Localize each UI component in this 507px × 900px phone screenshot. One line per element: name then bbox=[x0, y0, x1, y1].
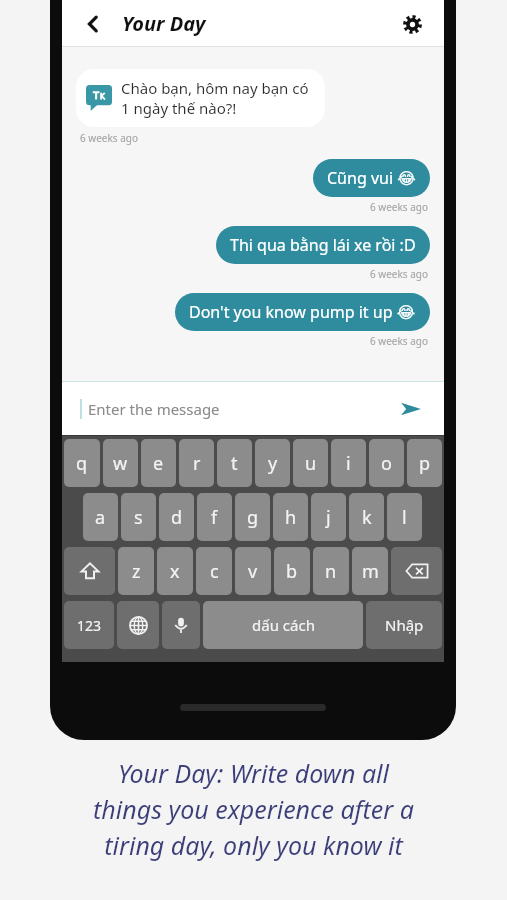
button[interactable]: Thi qua bằng lái xe rồi :D bbox=[216, 226, 430, 264]
staticText: Chào bạn, hôm nay bạn có bbox=[121, 78, 309, 98]
button[interactable]: q bbox=[64, 439, 100, 487]
staticText: l bbox=[402, 505, 407, 530]
staticText: b bbox=[286, 559, 298, 584]
button[interactable]: e bbox=[141, 439, 176, 487]
staticText: dấu cách bbox=[252, 615, 315, 635]
button[interactable]: Chào bạn, hôm nay bạn có bbox=[76, 69, 325, 127]
button[interactable]: k bbox=[349, 493, 384, 541]
staticText: Your Day bbox=[122, 10, 206, 37]
staticText: z bbox=[132, 559, 141, 584]
staticText: p bbox=[419, 451, 431, 476]
button[interactable]: dấu cách bbox=[203, 601, 363, 649]
staticText: u bbox=[305, 451, 317, 476]
button[interactable]: h bbox=[273, 493, 308, 541]
button[interactable]: d bbox=[159, 493, 194, 541]
staticText: Your Day: Write down all bbox=[0, 756, 507, 790]
staticText: w bbox=[113, 451, 128, 476]
staticText: k bbox=[362, 505, 372, 530]
button[interactable]: s bbox=[121, 493, 156, 541]
button[interactable]: m bbox=[352, 547, 388, 595]
staticText: i bbox=[346, 451, 351, 476]
button[interactable]: Change language bbox=[117, 601, 159, 649]
button[interactable]: Send bbox=[394, 392, 428, 426]
button[interactable]: 123 bbox=[64, 601, 114, 649]
button[interactable]: Backspace bbox=[391, 547, 442, 595]
button[interactable]: t bbox=[217, 439, 252, 487]
button[interactable]: Nhập bbox=[366, 601, 442, 649]
button[interactable]: p bbox=[407, 439, 442, 487]
button[interactable]: Don't you know pump it up 😂 bbox=[175, 293, 430, 331]
staticText: v bbox=[248, 559, 258, 584]
staticText: n bbox=[325, 559, 337, 584]
button[interactable]: i bbox=[331, 439, 366, 487]
staticText: Enter the message bbox=[88, 399, 220, 419]
staticText: d bbox=[171, 505, 183, 530]
staticText: y bbox=[268, 451, 278, 476]
button[interactable]: z bbox=[118, 547, 154, 595]
button[interactable]: f bbox=[197, 493, 232, 541]
button[interactable]: Voice input bbox=[162, 601, 200, 649]
button[interactable]: w bbox=[103, 439, 138, 487]
staticText: c bbox=[210, 559, 219, 584]
staticText: 6 weeks ago bbox=[370, 334, 428, 348]
staticText: o bbox=[381, 451, 392, 476]
staticText: Don't you know pump it up 😂 bbox=[189, 301, 416, 323]
staticText: 1 ngày thế nào?! bbox=[121, 98, 237, 118]
staticText: x bbox=[170, 559, 180, 584]
button[interactable]: Back bbox=[76, 7, 110, 41]
button[interactable]: Shift bbox=[64, 547, 115, 595]
staticText: 6 weeks ago bbox=[370, 200, 428, 214]
staticText: s bbox=[134, 505, 143, 530]
staticText: tiring day, only you know it bbox=[0, 828, 507, 862]
staticText: f bbox=[211, 505, 218, 530]
staticText: things you experience after a bbox=[0, 792, 507, 826]
button[interactable]: x bbox=[157, 547, 193, 595]
staticText: 6 weeks ago bbox=[370, 267, 428, 281]
staticText: Cũng vui 😂 bbox=[327, 167, 416, 189]
staticText: j bbox=[326, 505, 331, 530]
button[interactable]: j bbox=[311, 493, 346, 541]
staticText: h bbox=[285, 505, 297, 530]
staticText: 123 bbox=[77, 616, 102, 635]
button[interactable]: y bbox=[255, 439, 290, 487]
staticText: e bbox=[153, 451, 164, 476]
button[interactable]: l bbox=[387, 493, 422, 541]
button[interactable]: u bbox=[293, 439, 328, 487]
button[interactable]: Settings bbox=[394, 6, 430, 42]
staticText: t bbox=[231, 451, 238, 476]
staticText: m bbox=[362, 559, 379, 584]
staticText: a bbox=[95, 505, 106, 530]
button[interactable]: r bbox=[179, 439, 214, 487]
button[interactable]: n bbox=[313, 547, 349, 595]
button[interactable]: Enter the message bbox=[88, 399, 394, 419]
button[interactable]: b bbox=[274, 547, 310, 595]
button[interactable]: a bbox=[83, 493, 118, 541]
staticText: q bbox=[76, 451, 88, 476]
staticText: Thi qua bằng lái xe rồi :D bbox=[230, 234, 416, 256]
button[interactable]: c bbox=[196, 547, 232, 595]
staticText: 6 weeks ago bbox=[80, 131, 138, 145]
button[interactable]: Cũng vui 😂 bbox=[313, 159, 430, 197]
button[interactable]: g bbox=[235, 493, 270, 541]
staticText: g bbox=[247, 505, 259, 530]
staticText: Nhập bbox=[385, 615, 424, 635]
button[interactable]: v bbox=[235, 547, 271, 595]
button[interactable]: o bbox=[369, 439, 404, 487]
staticText: r bbox=[193, 451, 201, 476]
